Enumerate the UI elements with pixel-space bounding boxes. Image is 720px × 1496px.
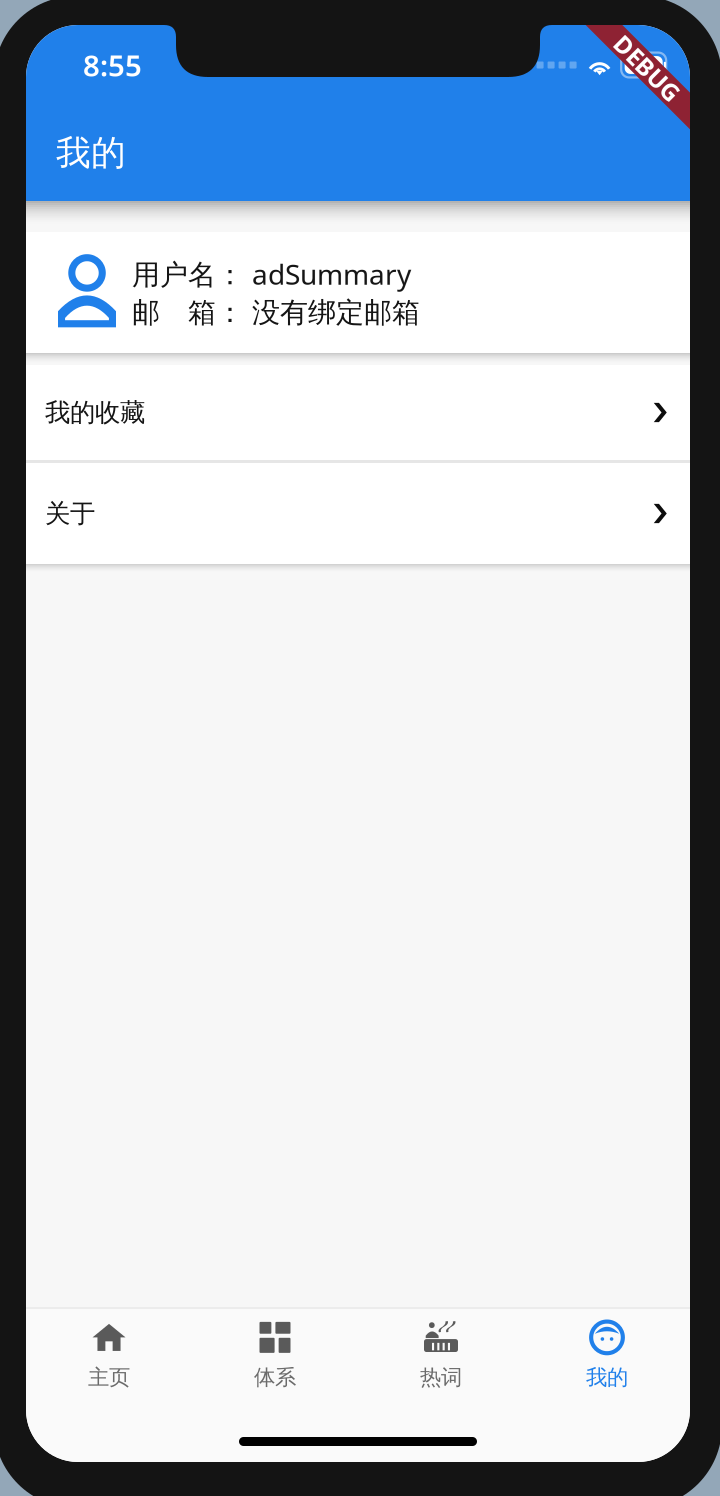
button[interactable]: 我的收藏 — [26, 365, 690, 460]
button[interactable]: 体系 — [192, 1311, 358, 1399]
staticText: 用户名： adSummary — [132, 255, 411, 292]
staticText: DEBUG — [606, 52, 688, 84]
button[interactable]: 热词 — [358, 1311, 524, 1399]
button[interactable]: 我的 — [524, 1311, 690, 1399]
staticText: 邮 箱： 没有绑定邮箱 — [132, 295, 420, 330]
staticText: 热词 — [420, 1364, 462, 1391]
staticText: 关于 — [45, 498, 95, 529]
staticText: 我的收藏 — [45, 397, 145, 428]
staticText: 8:55 — [83, 45, 142, 84]
staticText: 主页 — [88, 1364, 130, 1391]
staticText: 体系 — [254, 1364, 296, 1391]
staticText: 我的 — [56, 132, 126, 174]
button[interactable]: 关于 — [26, 463, 690, 564]
staticText: 我的 — [586, 1364, 628, 1391]
button[interactable]: 主页 — [26, 1311, 192, 1399]
